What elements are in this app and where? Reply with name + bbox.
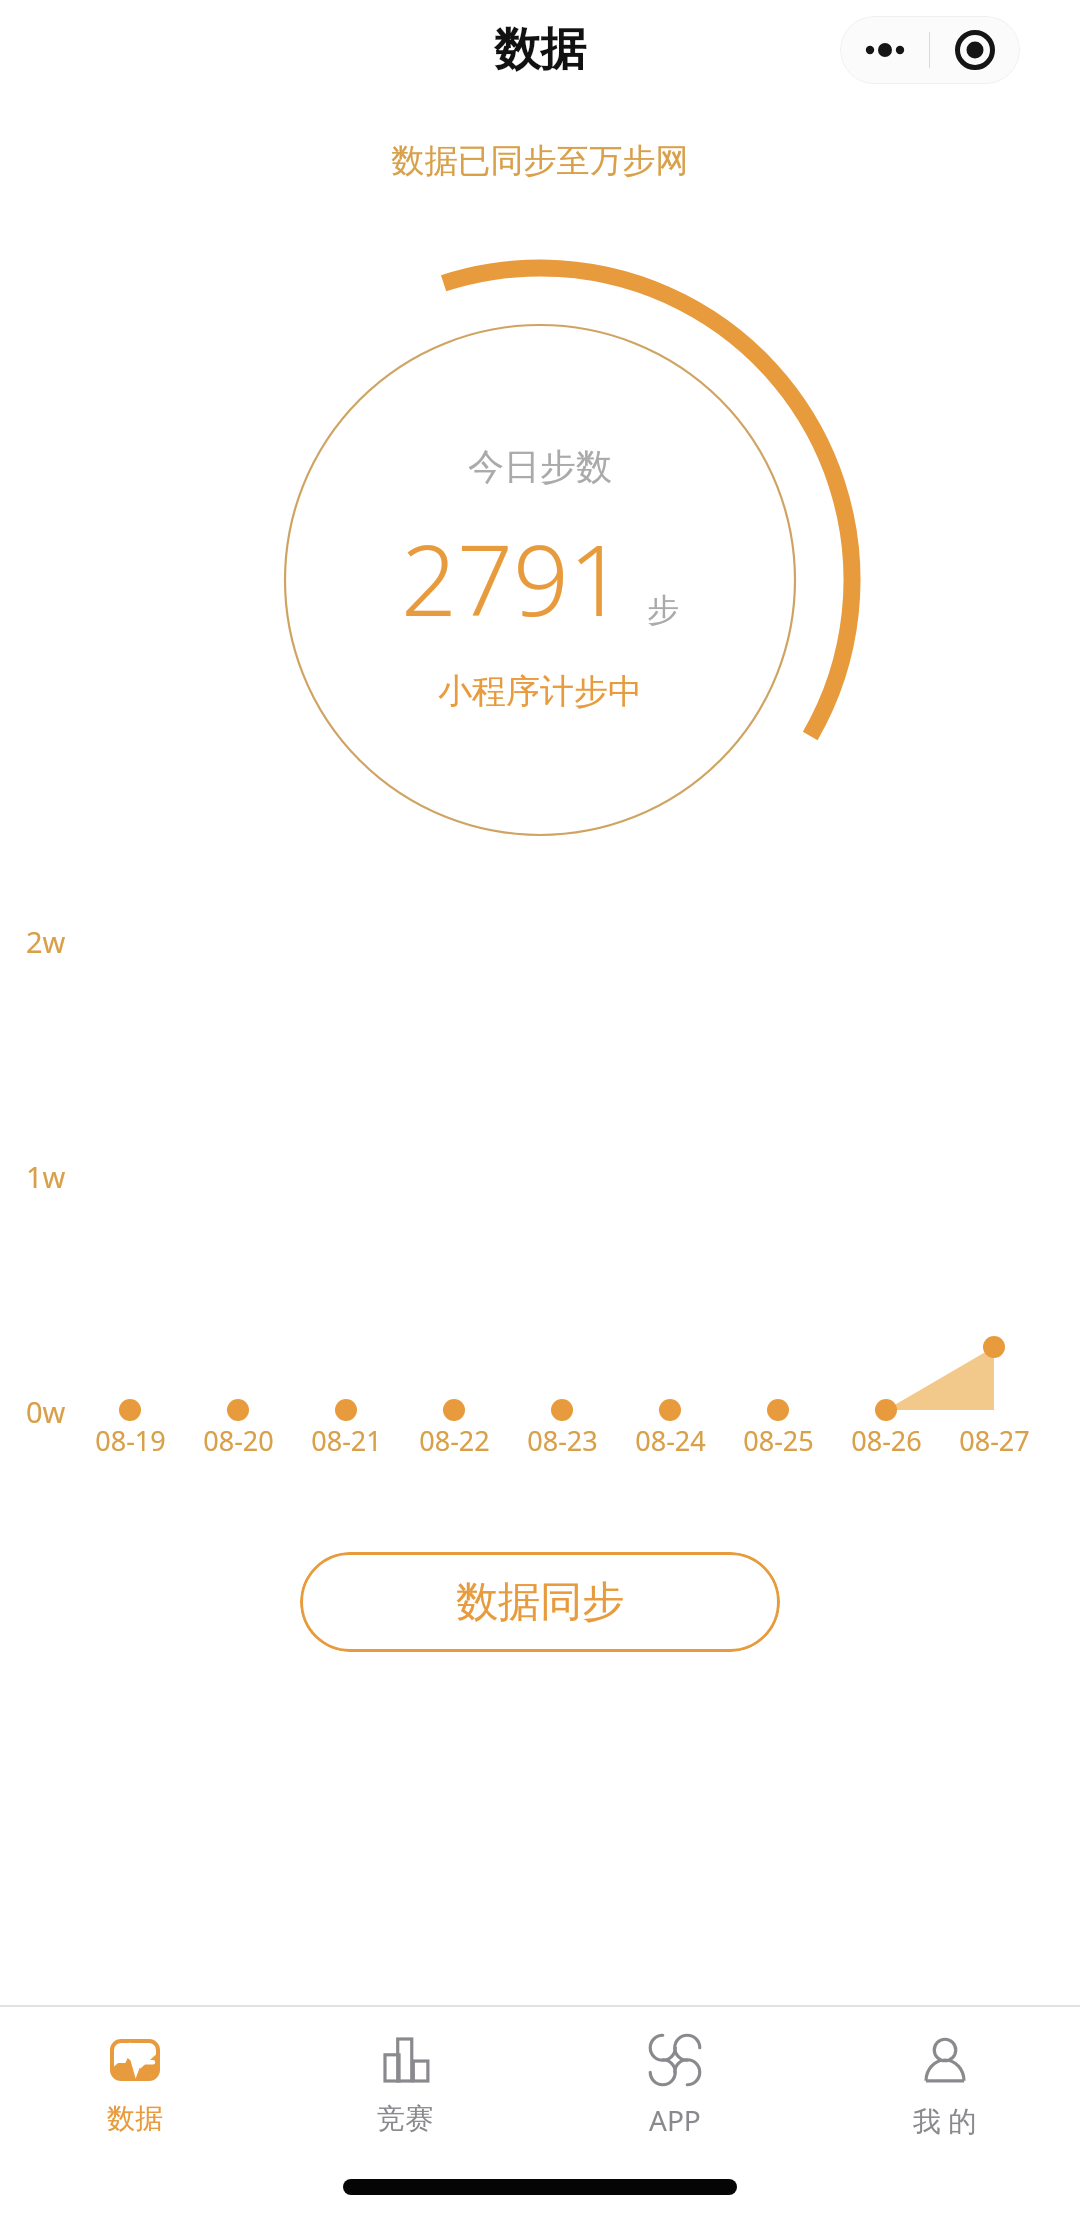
button[interactable]: APP — [540, 2007, 810, 2157]
staticText: 小程序计步中 — [438, 670, 642, 713]
other: APP — [650, 2035, 700, 2085]
other: Data — [109, 2034, 161, 2086]
staticText: 竞赛 — [377, 2101, 433, 2136]
button[interactable]: Close — [930, 16, 1020, 84]
staticText: 08-27 — [959, 1422, 1030, 1459]
staticText: 08-21 — [311, 1422, 382, 1459]
button[interactable]: Competition — [270, 2007, 540, 2157]
button[interactable]: More — [840, 16, 1020, 84]
staticText: 今日步数 — [468, 444, 612, 489]
staticText: 数据同步 — [456, 1576, 624, 1629]
staticText: 08-22 — [419, 1422, 490, 1459]
staticText: 1w — [26, 1157, 66, 1196]
staticText: 数据 — [107, 2101, 163, 2136]
other: Profile — [920, 2035, 970, 2085]
staticText: 2w — [26, 922, 66, 961]
staticText: 08-25 — [743, 1422, 814, 1459]
staticText: 步 — [647, 590, 679, 630]
staticText: 数据 — [494, 21, 586, 79]
staticText: 08-19 — [95, 1422, 166, 1459]
staticText: 08-26 — [851, 1422, 922, 1459]
staticText: 0w — [26, 1392, 66, 1431]
staticText: 2791 — [401, 511, 625, 644]
other: Competition — [379, 2034, 431, 2086]
staticText: 我 的 — [913, 2101, 977, 2139]
staticText: 08-20 — [203, 1422, 274, 1459]
staticText: 08-23 — [527, 1422, 598, 1459]
button[interactable]: Profile — [810, 2007, 1080, 2157]
staticText: 08-24 — [635, 1422, 706, 1459]
staticText: APP — [649, 2101, 701, 2139]
button[interactable]: 数据同步 — [300, 1552, 780, 1652]
button[interactable]: Data — [0, 2007, 270, 2157]
staticText: 数据已同步至万步网 — [0, 140, 1080, 182]
button[interactable]: More — [840, 16, 929, 84]
